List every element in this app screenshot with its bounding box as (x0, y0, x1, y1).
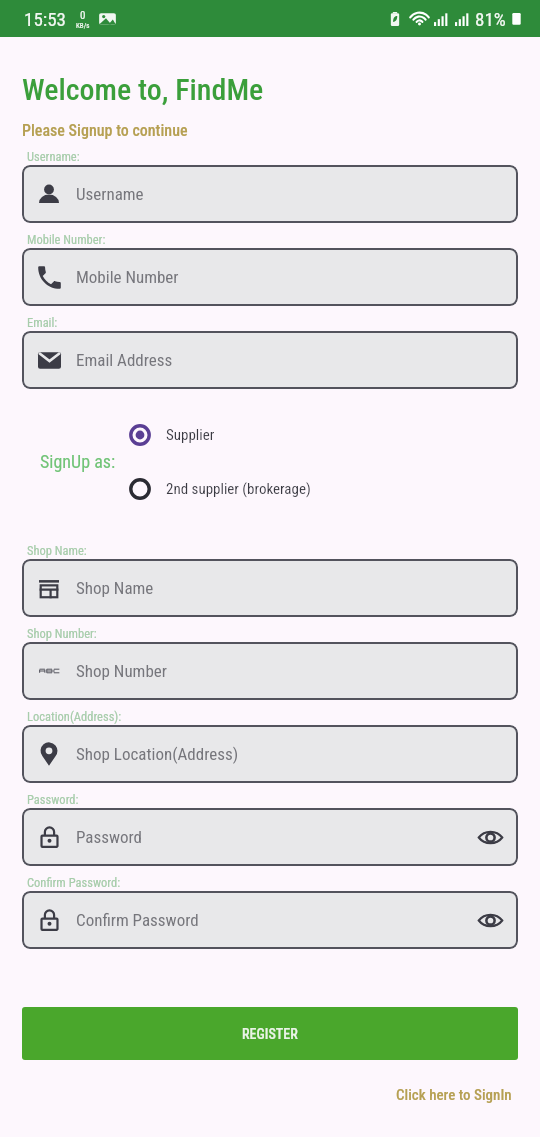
button[interactable]: Toggle password visibility (467, 814, 513, 860)
staticText: Mobile Number: (27, 232, 106, 247)
staticText: Please Signup to continue (22, 121, 188, 140)
staticText: Mobile Number (76, 267, 179, 287)
staticText: Email Address (76, 350, 173, 370)
button[interactable]: Confirm Password (22, 891, 518, 949)
button[interactable]: Click here to SignIn (396, 1086, 512, 1104)
staticText: Username: (27, 149, 80, 164)
staticText: 15:53 (24, 8, 66, 30)
staticText: Shop Number (76, 661, 167, 681)
button[interactable]: Mobile Number (22, 248, 518, 306)
staticText: 81% (475, 8, 506, 30)
staticText: Shop Number: (27, 626, 97, 641)
button[interactable]: Email Address (22, 331, 518, 389)
staticText: Password: (27, 792, 79, 807)
staticText: Shop Location(Address) (76, 744, 239, 764)
staticText: REGISTER (242, 1026, 298, 1042)
button[interactable]: Shop Name (22, 559, 518, 617)
button[interactable]: Username (22, 165, 518, 223)
button[interactable]: Supplier (129, 424, 215, 446)
button[interactable]: Password (22, 808, 518, 866)
staticText: KB/s (76, 22, 90, 30)
button[interactable]: Toggle password visibility (467, 897, 513, 943)
staticText: SignUp as: (40, 451, 116, 472)
staticText: Confirm Password: (27, 875, 121, 890)
staticText: 0 (80, 9, 86, 22)
staticText: Username (76, 184, 144, 204)
staticText: Confirm Password (76, 910, 199, 930)
button[interactable]: 2nd supplier (brokerage) (129, 478, 311, 500)
button[interactable]: Shop Location(Address) (22, 725, 518, 783)
staticText: Welcome to, FindMe (22, 72, 264, 107)
staticText: Location(Address): (27, 709, 122, 724)
staticText: 2nd supplier (brokerage) (166, 480, 311, 498)
staticText: Email: (27, 315, 58, 330)
staticText: Password (76, 827, 143, 847)
button[interactable]: Shop Number (22, 642, 518, 700)
staticText: Shop Name: (27, 543, 87, 558)
button[interactable]: REGISTER (22, 1007, 518, 1060)
staticText: Shop Name (76, 578, 154, 598)
staticText: Supplier (166, 426, 215, 444)
